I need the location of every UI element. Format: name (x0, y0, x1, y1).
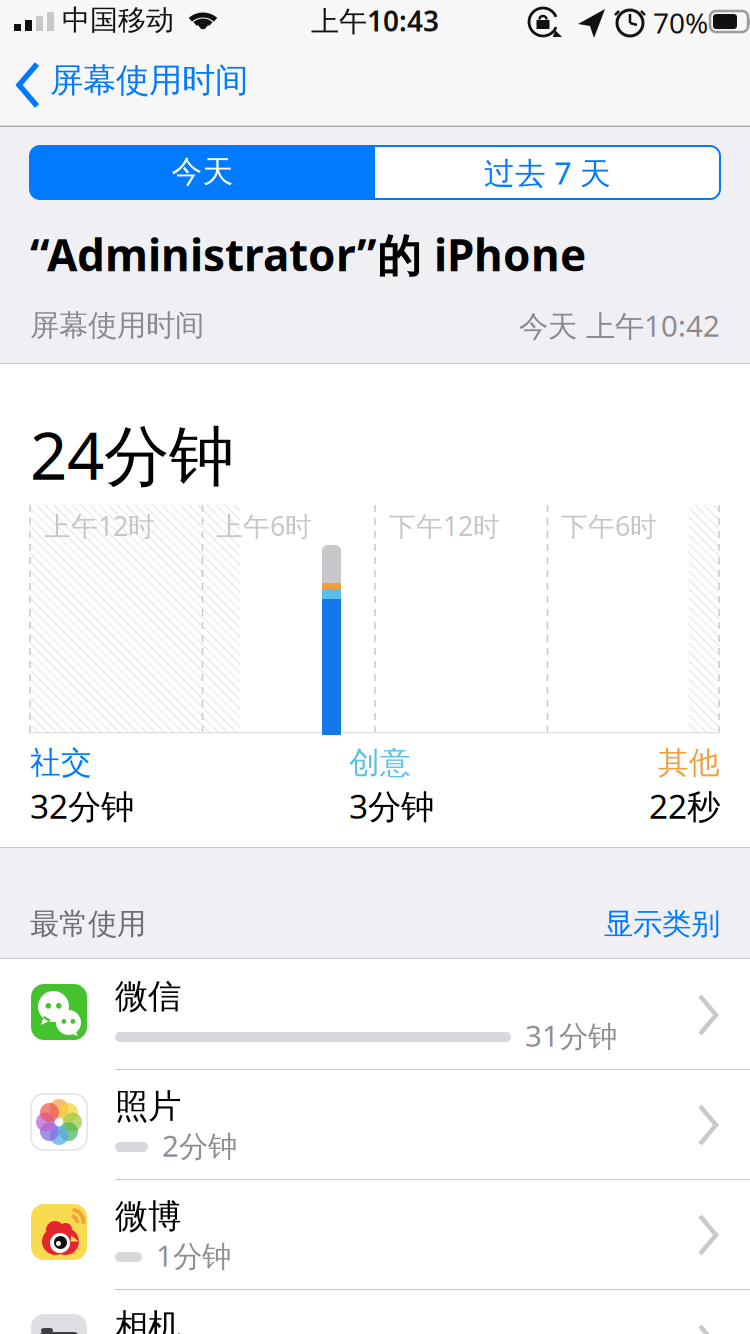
staticText: 今天 (171, 153, 233, 191)
button[interactable]: 今天 (30, 146, 375, 199)
staticText: 70% (653, 4, 708, 41)
button[interactable]: 显示类别 (604, 906, 720, 942)
staticText: 1分钟 (156, 1236, 231, 1275)
button[interactable]: 微信 (0, 959, 750, 1069)
staticText: 过去 7 天 (484, 152, 611, 193)
staticText: 上午12时 (44, 508, 155, 543)
staticText: 上午10:43 (311, 2, 439, 39)
staticText: 屏幕使用时间 (30, 307, 204, 343)
staticText: 相机 (115, 1306, 181, 1334)
staticText: 32分钟 (30, 784, 134, 828)
staticText: 2分钟 (162, 1126, 237, 1165)
staticText: 31分钟 (525, 1016, 617, 1055)
staticText: 屏幕使用时间 (50, 60, 248, 101)
staticText: 微博 (115, 1196, 181, 1237)
staticText: 24分钟 (30, 411, 234, 498)
staticText: 最常使用 (30, 906, 146, 942)
staticText: 中国移动 (62, 3, 174, 37)
staticText: 3分钟 (349, 784, 434, 828)
staticText: 今天 上午10:42 (519, 306, 720, 345)
staticText: 下午6时 (561, 508, 657, 543)
button[interactable]: 照片 (0, 1069, 750, 1179)
staticText: 其他 (658, 744, 720, 782)
staticText: “Administrator”的 iPhone (30, 225, 586, 284)
staticText: 创意 (349, 744, 411, 782)
button[interactable]: 过去 7 天 (375, 146, 720, 199)
staticText: 显示类别 (604, 906, 720, 942)
staticText: 下午12时 (389, 508, 500, 543)
staticText: 上午6时 (216, 508, 312, 543)
staticText: 22秒 (649, 784, 720, 828)
staticText: 微信 (115, 976, 181, 1017)
staticText: 照片 (115, 1086, 181, 1127)
button[interactable]: 屏幕使用时间 (0, 44, 280, 125)
staticText: 社交 (30, 744, 92, 782)
button[interactable]: 微博 (0, 1179, 750, 1289)
button[interactable]: 相机 (0, 1289, 750, 1334)
